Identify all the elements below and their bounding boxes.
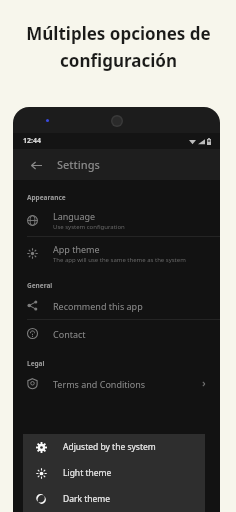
staticText: Dark theme [63, 493, 111, 505]
staticText: General [27, 281, 53, 290]
button[interactable]: Light theme [23, 460, 205, 486]
button[interactable]: Back [25, 154, 47, 176]
staticText: Use system configuration [53, 223, 125, 231]
staticText: configuración [60, 49, 177, 72]
staticText: Adjusted by the system [63, 441, 156, 453]
button[interactable]: Contact [13, 320, 220, 347]
staticText: App theme [53, 243, 100, 255]
button[interactable]: Language [13, 204, 220, 236]
staticText: Settings [57, 157, 100, 172]
staticText: Contact [53, 328, 86, 340]
staticText: Legal [27, 359, 45, 368]
button[interactable]: Recommend this app [13, 292, 220, 319]
button[interactable]: Terms and Conditions [13, 370, 220, 397]
staticText: 12:44 [23, 136, 41, 146]
staticText: Terms and Conditions [53, 378, 146, 390]
staticText: Light theme [63, 467, 112, 479]
staticText: The app will use the same theme as the s… [53, 256, 186, 264]
button[interactable]: Dark theme [23, 486, 205, 512]
staticText: Language [53, 210, 96, 222]
staticText: Recommend this app [53, 300, 143, 312]
staticText: Appearance [27, 193, 66, 202]
button[interactable]: App theme [13, 237, 220, 269]
staticText: Múltiples opciones de [26, 22, 211, 45]
button[interactable]: Adjusted by the system [23, 434, 205, 460]
